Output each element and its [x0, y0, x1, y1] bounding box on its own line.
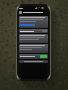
- button[interactable]: [17, 10, 50, 15]
- button[interactable]: [19, 16, 48, 28]
- button[interactable]: [19, 44, 48, 53]
- button[interactable]: [19, 60, 48, 63]
- button[interactable]: Enabled: [19, 54, 48, 59]
- button[interactable]: Enabled: [40, 55, 47, 58]
- button[interactable]: [19, 34, 48, 43]
- button[interactable]: [20, 24, 35, 26]
- button[interactable]: [19, 29, 48, 33]
